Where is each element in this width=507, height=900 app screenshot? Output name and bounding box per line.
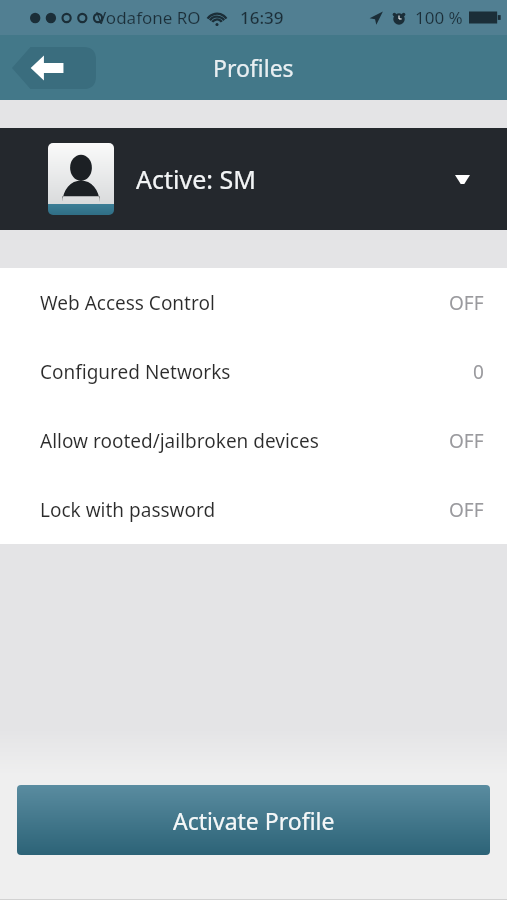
staticText: Configured Networks [40, 359, 473, 385]
staticText: Activate Profile [173, 805, 335, 836]
button[interactable]: Select profile [440, 157, 484, 201]
staticText: Allow rooted/jailbroken devices [40, 428, 449, 454]
button[interactable]: Lock with password [0, 475, 507, 544]
staticText: Vodafone RO [96, 6, 201, 29]
staticText: Profiles [213, 52, 294, 83]
staticText: 16:39 [240, 6, 284, 29]
button[interactable]: Activate Profile [17, 785, 490, 855]
button[interactable]: Active: SM [0, 128, 507, 230]
button[interactable]: Back [12, 47, 96, 89]
staticText: 0 [473, 359, 484, 385]
staticText: OFF [449, 428, 484, 454]
staticText: Lock with password [40, 497, 449, 523]
button[interactable]: Configured Networks [0, 337, 507, 406]
staticText: Active: SM [136, 162, 256, 196]
staticText: OFF [449, 290, 484, 316]
staticText: OFF [449, 497, 484, 523]
button[interactable]: Web Access Control [0, 268, 507, 337]
staticText: 100 % [415, 6, 463, 29]
button[interactable]: Allow rooted/jailbroken devices [0, 406, 507, 475]
staticText: Web Access Control [40, 290, 449, 316]
